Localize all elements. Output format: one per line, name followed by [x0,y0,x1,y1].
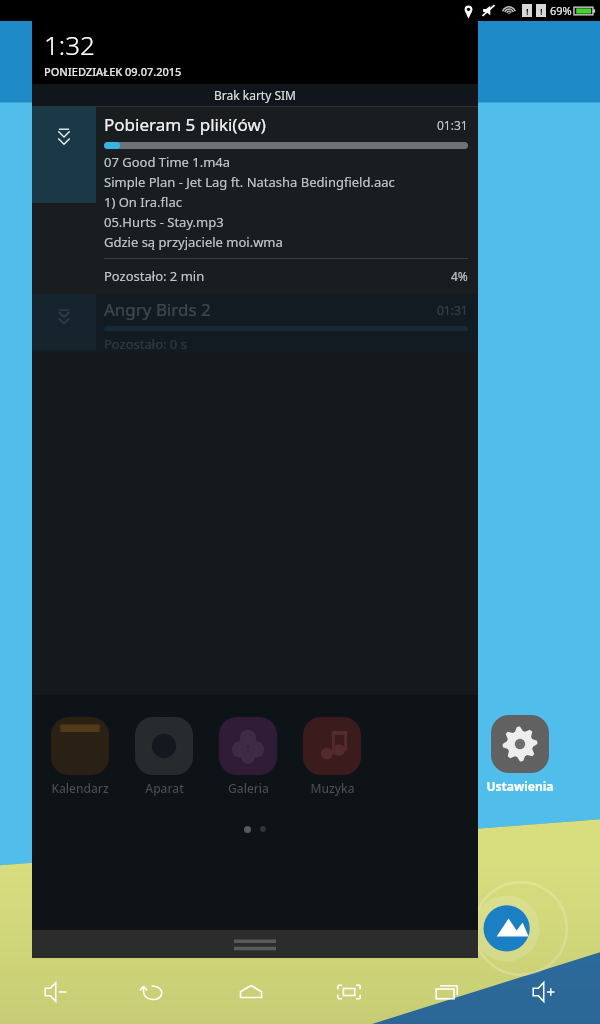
staticText: 4% [451,268,468,284]
staticText: Angry Birds 2 [104,298,211,321]
staticText: Pozostało: 0 s [104,335,187,353]
button[interactable]: Kalendarz [38,717,122,796]
staticText: PONIEDZIAŁEK 09.07.2015 [44,64,182,79]
staticText: Ustawienia [486,778,554,794]
button[interactable]: Angry Birds 2 [32,294,478,353]
staticText: Muzyka [310,780,355,796]
staticText: Galeria [228,778,269,794]
staticText: 07 Good Time 1.m4a [104,153,231,171]
staticText: 1) On Ira.flac [104,193,182,211]
button[interactable]: Aparat [122,717,206,796]
staticText: 01:31 [437,117,468,133]
button[interactable]: Volume up [502,960,586,1024]
staticText: Aparat [145,778,184,794]
button[interactable]: Muzyka [290,715,374,794]
button[interactable]: Pobieram 5 pliki(ów) [32,107,478,294]
staticText: Gdzie są przyjaciele moi.wma [104,233,283,251]
button[interactable]: Galeria [206,715,290,794]
button[interactable]: Screenshot [307,960,391,1024]
button[interactable]: Volume down [14,960,98,1024]
button[interactable]: Aparat [122,715,206,794]
staticText: 01:31 [437,302,468,318]
button[interactable]: Muzyka [290,717,374,796]
button[interactable]: Back [111,960,195,1024]
staticText: Kalendarz [51,780,109,796]
staticText: Pozostało: 2 min [104,267,205,285]
button[interactable]: Home [209,960,293,1024]
staticText: Simple Plan - Jet Lag ft. Natasha Beding… [104,173,395,191]
staticText: 1:32 [44,27,95,62]
staticText: ! [540,5,543,17]
button[interactable]: Ustawienia [478,715,562,794]
staticText: Aparat [145,780,184,796]
button[interactable]: Recent apps [405,960,489,1024]
staticText: Pobieram 5 pliki(ów) [104,113,266,136]
staticText: 05.Hurts - Stay.mp3 [104,213,224,231]
staticText: Muzyka [310,778,355,794]
staticText: 69% [550,3,572,18]
staticText: Brak karty SIM [214,87,296,103]
button[interactable]: Galeria [206,717,290,796]
staticText: ! [526,5,529,17]
button[interactable]: Close notification shade [32,930,478,958]
button[interactable]: Kalendarz [38,715,122,794]
staticText: Galeria [228,780,269,796]
staticText: Kalendarz [51,778,109,794]
